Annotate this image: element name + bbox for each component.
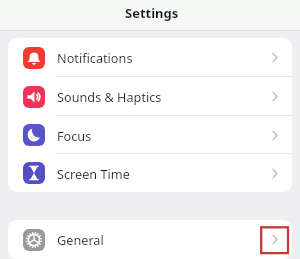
staticText: General <box>57 231 104 248</box>
button[interactable]: Sounds & Haptics <box>8 77 292 116</box>
staticText: Settings <box>125 4 179 22</box>
button[interactable]: Screen Time <box>8 154 292 192</box>
button[interactable]: General <box>8 220 292 259</box>
staticText: Focus <box>57 127 92 144</box>
button[interactable]: Notifications <box>8 38 292 77</box>
staticText: Notifications <box>57 49 133 66</box>
staticText: Sounds & Haptics <box>57 88 162 105</box>
button[interactable]: Focus <box>8 116 292 154</box>
staticText: Screen Time <box>57 165 130 182</box>
